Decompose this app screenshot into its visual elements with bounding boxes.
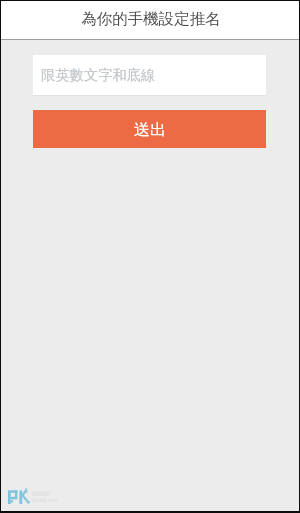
other: PK pkstep.com watermark — [8, 490, 58, 506]
staticText: 為你的手機設定推名 — [81, 9, 221, 29]
button[interactable]: 送出 — [33, 110, 266, 148]
button[interactable]: 限英數文字和底線 — [33, 55, 266, 95]
staticText: pkstep.com — [32, 497, 58, 503]
staticText: 送出 — [134, 120, 166, 140]
staticText: 限英數文字和底線 — [41, 66, 156, 84]
staticText: 痞凱踏實 — [32, 491, 51, 497]
